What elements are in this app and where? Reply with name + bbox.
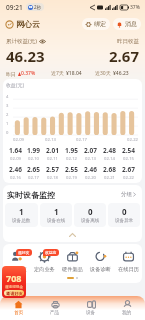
button[interactable]: 收起 (3, 227, 142, 242)
staticText: 定向业务 (34, 266, 55, 273)
staticText: 02-21 (104, 175, 115, 181)
button[interactable]: 分组 (119, 189, 138, 200)
button[interactable]: 硬件新品 (58, 250, 86, 273)
staticText: 2.48 (103, 146, 116, 155)
staticText: 实时设备监控 (7, 190, 55, 200)
staticText: 02-15 (123, 156, 134, 162)
staticText: 2.55 (65, 165, 78, 174)
staticText: 产品 (50, 310, 60, 316)
staticText: 02-17 (76, 137, 107, 143)
button[interactable]: 我的 (109, 296, 145, 320)
staticText: 02-10 (28, 156, 39, 162)
staticText: 2.46 (84, 165, 97, 174)
staticText: 02-20 (85, 175, 96, 181)
staticText: 2 (6, 112, 9, 118)
staticText: 46.23 (6, 46, 45, 66)
button[interactable]: 2.65 (24, 165, 43, 181)
staticText: 设备诊断 (90, 266, 111, 273)
staticText: 708 (6, 272, 22, 284)
staticText: 近7天 (51, 70, 64, 77)
staticText: 02-11 (47, 156, 58, 162)
staticText: 累计收益(元) (6, 37, 37, 45)
staticText: 2.07 (84, 146, 97, 155)
staticText: 收益(元) (6, 82, 25, 89)
button[interactable]: 2.55 (62, 165, 81, 181)
staticText: 2.65 (27, 165, 40, 174)
staticText: 2.57 (46, 165, 59, 174)
button[interactable]: 首页 (0, 296, 37, 320)
button[interactable]: 2.57 (43, 165, 62, 181)
button[interactable]: 2.68 (100, 165, 119, 181)
staticText: 02-17 (28, 175, 39, 181)
staticText: 02-14 (104, 156, 115, 162)
staticText: 37% (130, 4, 140, 11)
staticText: 邀好友 (18, 250, 30, 255)
staticText: 2.46 (9, 165, 22, 174)
button[interactable]: 2.48 (100, 146, 119, 162)
button[interactable]: 2.07 (81, 146, 100, 162)
staticText: 1.95 (65, 146, 78, 155)
staticText: 02-19 (66, 175, 77, 181)
staticText: 设备异常 (115, 218, 134, 224)
staticText: 0 (6, 130, 9, 136)
button[interactable]: 2.54 (119, 146, 138, 162)
staticText: 1 (54, 206, 59, 217)
button[interactable]: 1.64 (6, 146, 24, 162)
button[interactable]: 2.46 (81, 165, 100, 181)
staticText: 02-18 (47, 175, 58, 181)
staticText: 2秒 (34, 4, 42, 10)
staticText: 网心云 (16, 19, 40, 29)
staticText: 02-22 (123, 175, 134, 181)
staticText: ¥18.04 (66, 70, 82, 77)
button[interactable]: 消息 (113, 18, 141, 30)
button[interactable]: 2.67 (119, 165, 138, 181)
staticText: 收益高 (45, 250, 57, 255)
staticText: 1 (19, 206, 24, 217)
staticText: 硬件新品 (62, 266, 83, 273)
button[interactable]: 2.01 (43, 146, 62, 162)
button[interactable]: 1 (40, 203, 72, 227)
staticText: 2.54 (122, 146, 135, 155)
staticText: 1.99 (27, 146, 40, 155)
button[interactable]: 1.95 (62, 146, 81, 162)
staticText: 4 (6, 94, 9, 100)
staticText: 首页 (14, 310, 24, 316)
button[interactable]: 邀好友 (3, 250, 30, 273)
button[interactable]: 在线日历 (114, 250, 142, 273)
button[interactable]: 1.99 (24, 146, 43, 162)
staticText: 02-13 (45, 137, 76, 143)
staticText: 设备总数 (12, 218, 31, 224)
button[interactable]: 收益高 (30, 250, 58, 273)
button[interactable]: 2.46 (6, 165, 24, 181)
staticText: 昨日收益 (117, 38, 139, 45)
staticText: 02-12 (66, 156, 77, 162)
staticText: 0.37% (21, 70, 36, 77)
staticText: 09:21 (6, 3, 23, 12)
staticText: 2.67 (122, 165, 135, 174)
button[interactable]: 设备诊断 (86, 250, 114, 273)
staticText: 邀请好友 (6, 266, 27, 273)
staticText: 消息 (125, 20, 137, 28)
button[interactable]: 708 (2, 266, 26, 298)
staticText: 1.64 (9, 146, 22, 155)
button[interactable]: 产品 (37, 296, 73, 320)
staticText: 2.01 (46, 146, 59, 155)
button[interactable]: 1 (5, 203, 38, 227)
staticText: 0 (122, 206, 127, 217)
staticText: 邀请得现金 (5, 285, 23, 290)
staticText: 邀请好友 (6, 291, 23, 296)
button[interactable]: 0 (108, 203, 140, 227)
staticText: 3 (6, 103, 9, 109)
button[interactable]: 绑定 (82, 18, 110, 30)
staticText: 2.67 (109, 46, 139, 66)
staticText: 02-09 (10, 156, 21, 162)
staticText: 02-13 (85, 156, 96, 162)
button[interactable]: 显示或隐藏收益 (39, 39, 46, 44)
staticText: 近30天 (95, 70, 111, 77)
button[interactable]: 设备 (73, 296, 109, 320)
staticText: 1 (6, 121, 9, 127)
staticText: 设备在线 (47, 218, 66, 224)
staticText: 设备离线 (81, 218, 100, 224)
button[interactable]: 0 (74, 203, 106, 227)
staticText: ¥46.23 (113, 70, 129, 77)
